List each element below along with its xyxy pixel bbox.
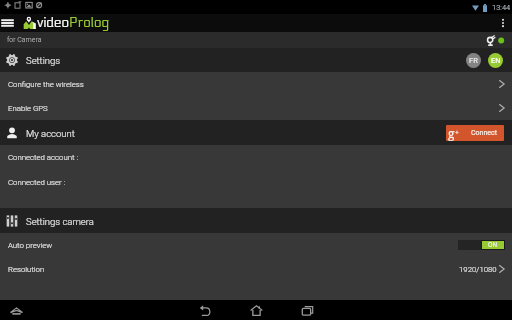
button[interactable]: Open navigation menu bbox=[0, 16, 15, 30]
staticText: Prolog bbox=[69, 15, 110, 31]
button[interactable]: g bbox=[446, 125, 504, 141]
staticText: Resolution bbox=[8, 265, 45, 274]
button[interactable]: Connected user : bbox=[0, 170, 512, 195]
staticText: Enable GPS bbox=[8, 104, 48, 113]
staticText: Settings camera bbox=[26, 216, 94, 227]
button[interactable]: Configure the wireless bbox=[0, 72, 512, 96]
button[interactable]: Back bbox=[188, 300, 222, 320]
staticText: FR bbox=[469, 56, 478, 65]
button[interactable]: Home bbox=[239, 300, 273, 320]
button[interactable]: EN bbox=[488, 53, 503, 68]
button[interactable]: Connected account : bbox=[0, 145, 512, 170]
staticText: 13:44 bbox=[492, 3, 511, 12]
button[interactable]: Auto preview bbox=[0, 233, 512, 257]
button[interactable]: More options bbox=[497, 15, 509, 31]
staticText: Configure the wireless bbox=[8, 80, 84, 89]
staticText: for Camera bbox=[7, 36, 42, 44]
staticText: video bbox=[37, 15, 69, 31]
button[interactable]: App shortcut bbox=[6, 300, 26, 320]
staticText: Connected account : bbox=[8, 153, 79, 162]
staticText: g bbox=[448, 125, 455, 141]
staticText: Connect bbox=[471, 129, 497, 137]
staticText: EN bbox=[491, 56, 501, 65]
other: GPS status bbox=[484, 35, 506, 46]
staticText: Connected user : bbox=[8, 178, 66, 187]
button[interactable]: Enable GPS bbox=[0, 96, 512, 120]
button[interactable]: Resolution bbox=[0, 257, 512, 281]
staticText: + bbox=[455, 128, 459, 138]
staticText: My account bbox=[26, 128, 75, 139]
staticText: Settings bbox=[26, 55, 61, 66]
staticText: ON bbox=[488, 241, 498, 249]
button[interactable]: Recent apps bbox=[290, 300, 324, 320]
staticText: Auto preview bbox=[8, 241, 53, 250]
button[interactable]: FR bbox=[466, 53, 481, 68]
staticText: 1920/1080 bbox=[459, 265, 497, 274]
